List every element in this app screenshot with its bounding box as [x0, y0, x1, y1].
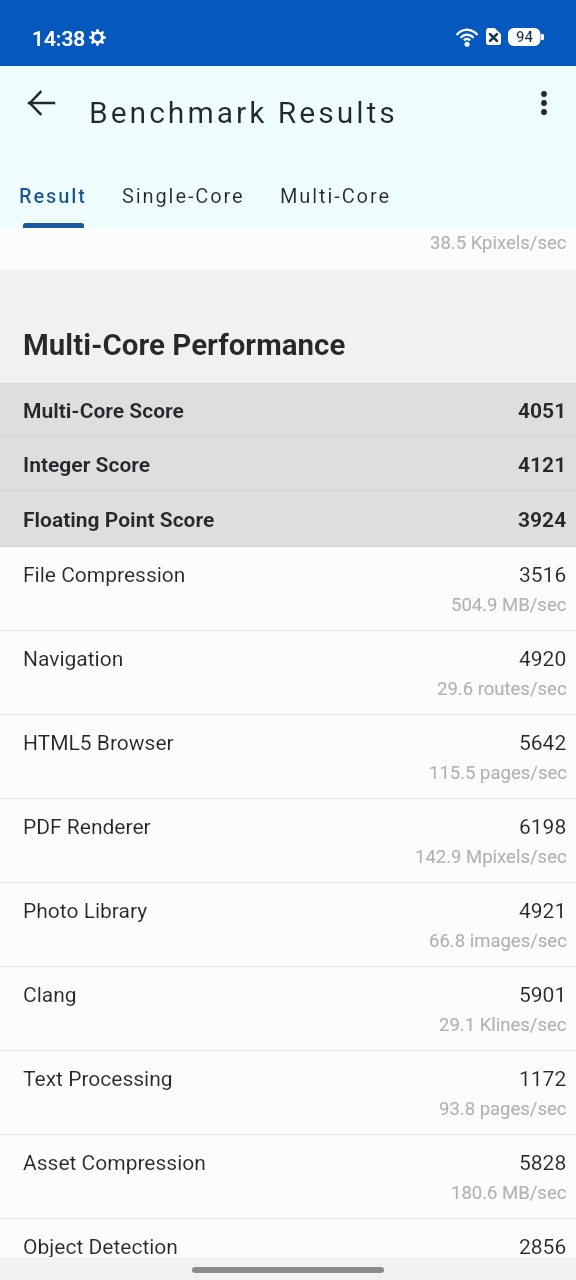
- staticText: 93.8 pages/sec: [439, 1098, 567, 1120]
- button[interactable]: More options: [520, 79, 568, 127]
- staticText: Navigation: [23, 647, 124, 672]
- button[interactable]: Single-Core: [103, 154, 261, 228]
- staticText: Single-Core: [122, 184, 245, 207]
- staticText: 142.9 Mpixels/sec: [415, 846, 567, 868]
- staticText: 3924: [518, 508, 567, 533]
- staticText: 5828: [519, 1151, 567, 1176]
- button[interactable]: Object Detection: [0, 1219, 576, 1257]
- staticText: Text Processing: [23, 1067, 173, 1092]
- staticText: 4920: [519, 647, 567, 672]
- staticText: Result: [19, 184, 87, 207]
- staticText: Benchmark Results: [89, 95, 398, 130]
- staticText: 115.5 pages/sec: [429, 762, 567, 784]
- staticText: 14:38: [32, 27, 86, 52]
- button[interactable]: PDF Renderer: [0, 799, 576, 883]
- staticText: 504.9 MB/sec: [451, 594, 567, 616]
- staticText: 38.5 Kpixels/sec: [430, 232, 567, 254]
- staticText: 2856: [519, 1235, 567, 1260]
- button[interactable]: File Compression: [0, 547, 576, 631]
- staticText: 1172: [519, 1067, 567, 1092]
- staticText: 6198: [519, 815, 567, 840]
- staticText: 5901: [519, 983, 567, 1008]
- staticText: 5642: [519, 731, 567, 756]
- staticText: Clang: [23, 983, 77, 1008]
- staticText: Multi-Core: [280, 184, 391, 207]
- button[interactable]: HTML5 Browser: [0, 715, 576, 799]
- button[interactable]: Photo Library: [0, 883, 576, 967]
- staticText: Object Detection: [23, 1235, 178, 1260]
- button[interactable]: Asset Compression: [0, 1135, 576, 1219]
- staticText: 29.1 Klines/sec: [439, 1014, 567, 1036]
- staticText: HTML5 Browser: [23, 731, 174, 756]
- button[interactable]: Result: [0, 154, 103, 228]
- staticText: 180.6 MB/sec: [451, 1182, 567, 1204]
- button[interactable]: Back: [17, 79, 65, 127]
- button[interactable]: Clang: [0, 967, 576, 1051]
- button[interactable]: Integer Score: [0, 437, 576, 491]
- staticText: 3516: [519, 563, 567, 588]
- other: Settings: [89, 29, 106, 46]
- staticText: 94: [516, 28, 534, 46]
- staticText: PDF Renderer: [23, 815, 151, 840]
- staticText: Asset Compression: [23, 1151, 206, 1176]
- staticText: Multi-Core Score: [23, 399, 184, 424]
- staticText: 66.8 images/sec: [429, 930, 567, 952]
- staticText: Floating Point Score: [23, 508, 215, 533]
- button[interactable]: Navigation: [0, 631, 576, 715]
- staticText: Multi-Core Performance: [23, 328, 346, 363]
- button[interactable]: Floating Point Score: [0, 491, 576, 547]
- button[interactable]: Text Processing: [0, 1051, 576, 1135]
- button[interactable]: Multi-Core Score: [0, 383, 576, 437]
- staticText: 4051: [518, 399, 567, 424]
- staticText: Integer Score: [23, 453, 151, 478]
- button[interactable]: Multi-Core: [261, 154, 407, 228]
- staticText: 29.6 routes/sec: [437, 678, 567, 700]
- staticText: Photo Library: [23, 899, 148, 924]
- staticText: 4921: [519, 899, 567, 924]
- staticText: 4121: [518, 453, 567, 478]
- staticText: File Compression: [23, 563, 186, 588]
